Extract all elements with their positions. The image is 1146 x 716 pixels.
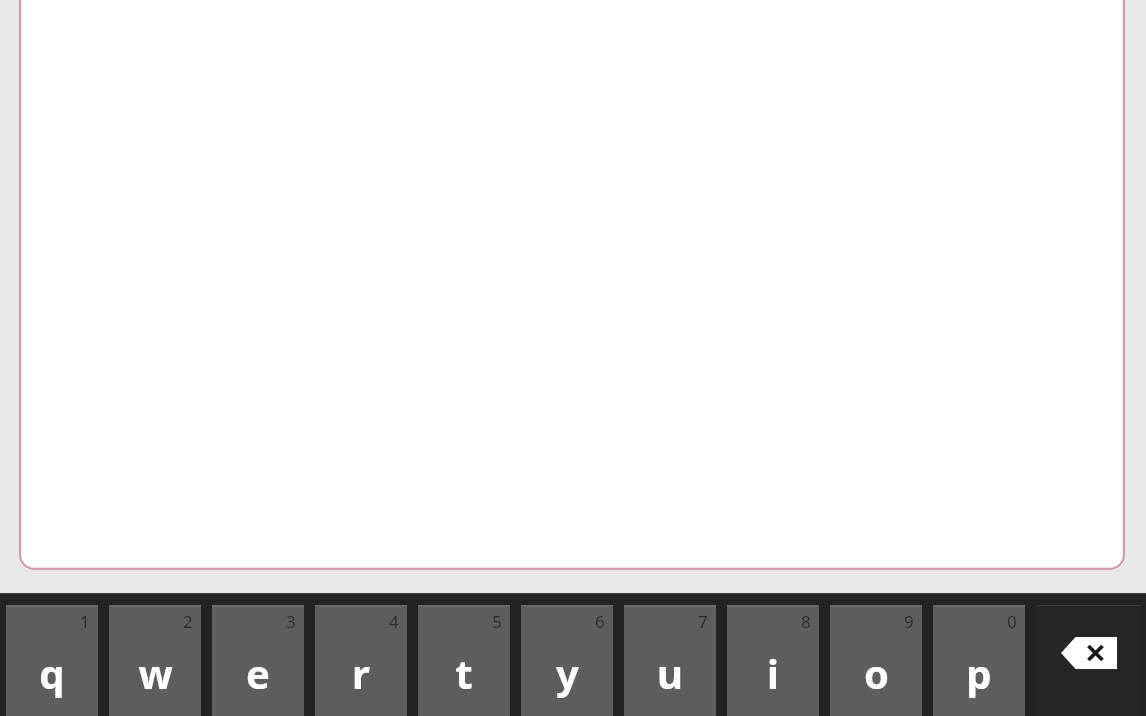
button[interactable]: 0 bbox=[933, 605, 1025, 716]
button[interactable]: 4 bbox=[315, 605, 407, 716]
staticText: 0 bbox=[1007, 610, 1017, 633]
staticText: 8 bbox=[801, 610, 811, 633]
button[interactable]: 2 bbox=[109, 605, 201, 716]
button[interactable]: 5 bbox=[418, 605, 510, 716]
staticText: y bbox=[556, 646, 579, 700]
staticText: r bbox=[352, 646, 370, 700]
staticText: 5 bbox=[492, 610, 502, 633]
staticText: u bbox=[657, 646, 683, 700]
staticText: 7 bbox=[698, 610, 708, 633]
button[interactable]: Backspace bbox=[1037, 605, 1141, 716]
staticText: 3 bbox=[286, 610, 296, 633]
button[interactable]: 9 bbox=[830, 605, 922, 716]
staticText: o bbox=[864, 646, 889, 700]
staticText: t bbox=[455, 646, 473, 700]
staticText: e bbox=[246, 646, 270, 700]
staticText: w bbox=[138, 646, 173, 700]
staticText: 2 bbox=[183, 610, 193, 633]
staticText: 6 bbox=[595, 610, 605, 633]
staticText: 1 bbox=[80, 610, 90, 633]
staticText: i bbox=[767, 646, 779, 700]
button[interactable]: 8 bbox=[727, 605, 819, 716]
button[interactable]: 1 bbox=[6, 605, 98, 716]
staticText: q bbox=[39, 646, 65, 700]
button[interactable]: 3 bbox=[212, 605, 304, 716]
staticText: p bbox=[966, 646, 992, 700]
staticText: 4 bbox=[389, 610, 399, 633]
staticText: 9 bbox=[904, 610, 914, 633]
button[interactable]: 7 bbox=[624, 605, 716, 716]
button[interactable]: 6 bbox=[521, 605, 613, 716]
